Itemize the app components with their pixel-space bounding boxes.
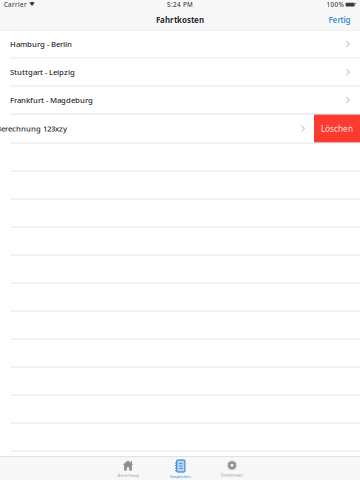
staticText: Berechnung: [117, 472, 138, 478]
button[interactable]: Einstellungen: [206, 457, 258, 480]
button[interactable]: Löschen: [314, 115, 360, 143]
staticText: Stuttgart - Leipzig: [10, 67, 75, 77]
staticText: Fahrtkosten: [156, 14, 204, 25]
staticText: Gespeichert: [169, 474, 190, 479]
button[interactable]: Fertig: [319, 9, 360, 30]
button[interactable]: Gespeichert: [154, 457, 206, 480]
staticText: Frankfurt - Magdeburg: [10, 95, 93, 105]
button[interactable]: Berechnung: [102, 457, 154, 480]
button[interactable]: Frankfurt - Magdeburg: [0, 87, 360, 115]
staticText: Berechnung 123xzy: [0, 123, 67, 134]
button[interactable]: Stuttgart - Leipzig: [0, 59, 360, 87]
button[interactable]: Hamburg - Berlin: [0, 31, 360, 59]
staticText: Einstellungen: [221, 472, 243, 478]
button[interactable]: Berechnung 123xzy: [0, 115, 314, 142]
staticText: 5:24 PM: [167, 0, 193, 9]
staticText: 100%: [327, 0, 344, 9]
staticText: Hamburg - Berlin: [10, 39, 72, 49]
staticText: Löschen: [321, 123, 353, 134]
staticText: Carrier: [4, 0, 27, 9]
staticText: Fertig: [328, 14, 350, 25]
